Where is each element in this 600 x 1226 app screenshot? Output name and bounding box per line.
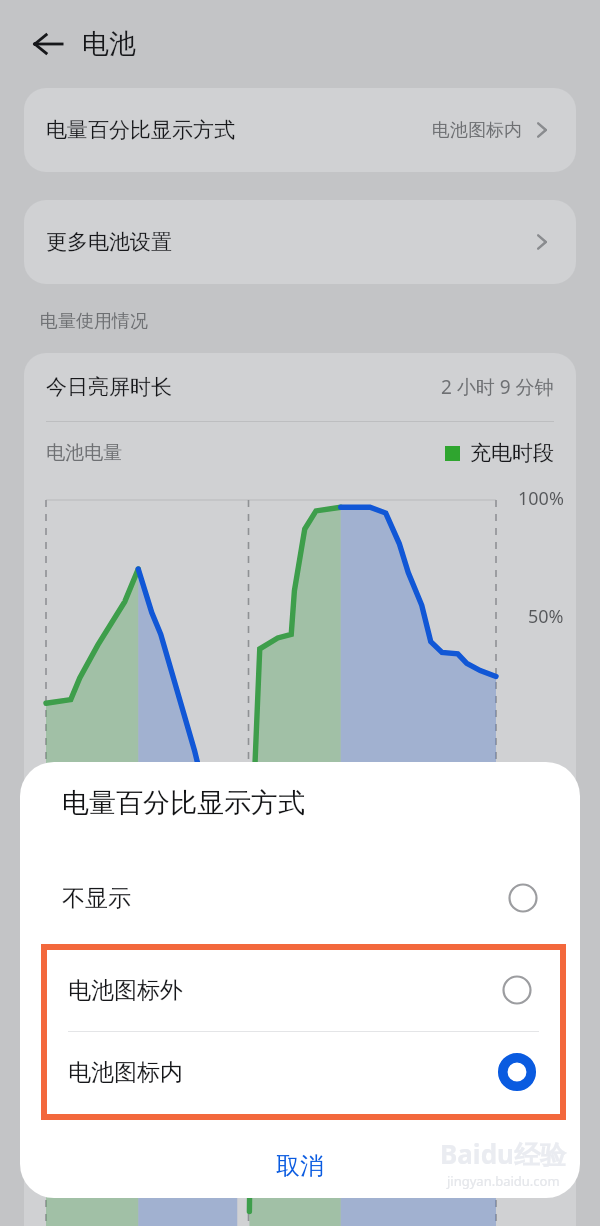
button[interactable]: 不显示 bbox=[20, 858, 580, 938]
staticText: 电量使用情况 bbox=[40, 310, 148, 333]
staticText: 电池 bbox=[82, 27, 136, 61]
staticText: 电量百分比显示方式 bbox=[62, 786, 305, 820]
staticText: 不显示 bbox=[62, 884, 131, 913]
staticText: jingyan.baidu.com bbox=[447, 1172, 560, 1190]
staticText: 电池图标外 bbox=[68, 976, 183, 1005]
button[interactable]: Back bbox=[26, 22, 70, 66]
button[interactable]: 电量百分比显示方式 bbox=[24, 88, 576, 172]
button[interactable]: 电池图标内 bbox=[47, 1032, 560, 1112]
staticText: Baidu经验 bbox=[440, 1136, 566, 1172]
button[interactable]: 取消 bbox=[20, 1136, 580, 1196]
staticText: 取消 bbox=[276, 1151, 324, 1181]
staticText: 电池图标内 bbox=[68, 1058, 183, 1087]
staticText: 2 小时 9 分钟 bbox=[441, 374, 554, 400]
staticText: 50% bbox=[528, 604, 564, 629]
staticText: 电池电量 bbox=[46, 441, 122, 465]
staticText: 电池图标内 bbox=[432, 119, 522, 142]
staticText: 100% bbox=[518, 486, 564, 511]
button[interactable]: 更多电池设置 bbox=[24, 200, 576, 284]
staticText: 电量百分比显示方式 bbox=[46, 117, 235, 143]
staticText: 今日亮屏时长 bbox=[46, 374, 172, 400]
staticText: 更多电池设置 bbox=[46, 229, 172, 255]
staticText: 充电时段 bbox=[470, 440, 554, 466]
button[interactable]: 电池图标外 bbox=[47, 950, 560, 1030]
